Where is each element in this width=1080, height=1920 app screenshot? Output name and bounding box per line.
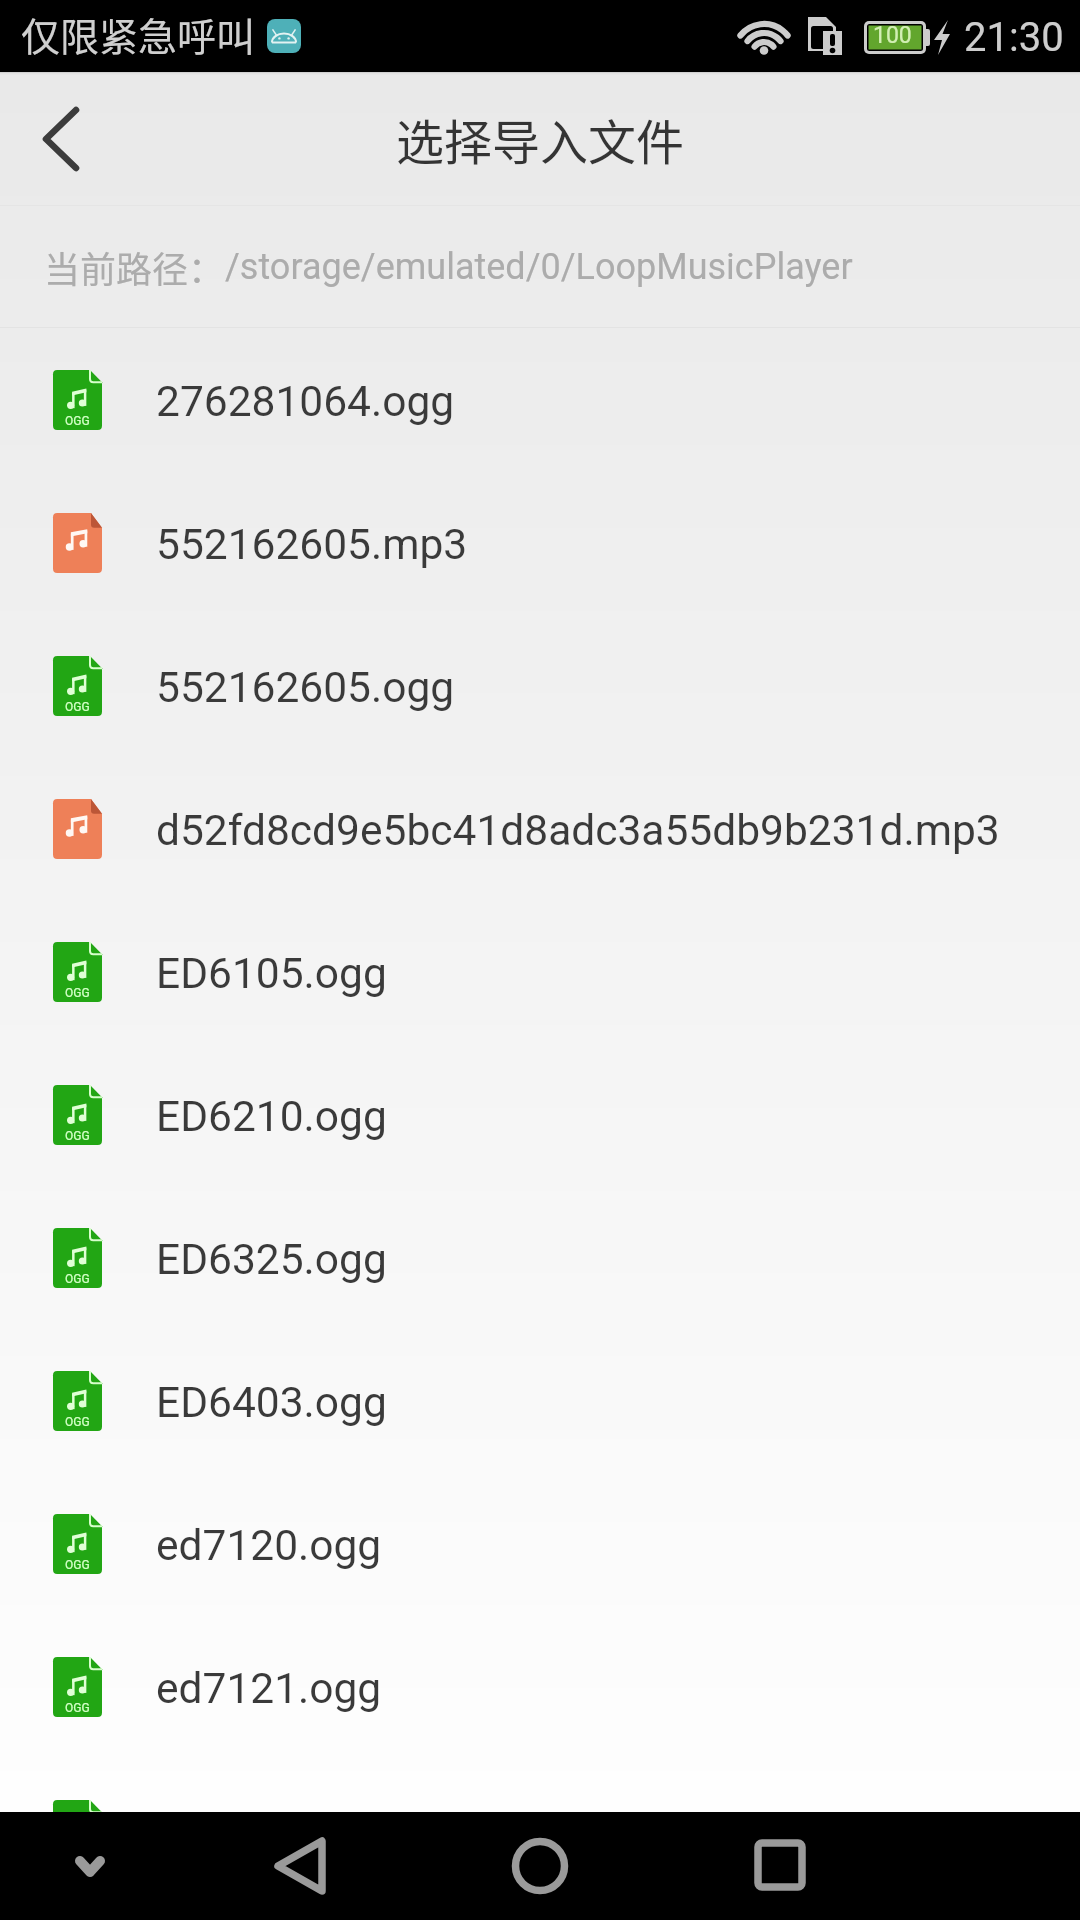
staticText: 100	[873, 22, 912, 49]
staticText: ed7121.ogg	[156, 1664, 382, 1714]
staticText: 276281064.ogg	[156, 377, 455, 427]
button[interactable]: OGG	[0, 900, 1080, 1043]
staticText: 552162605.mp3	[156, 520, 468, 570]
staticText: d52fd8cd9e5bc41d8adc3a55db9b231d.mp3	[156, 806, 1000, 856]
staticText: 选择导入文件	[396, 104, 685, 174]
staticText: OGG	[65, 1558, 90, 1572]
staticText: 21:30	[964, 14, 1064, 61]
staticText: OGG	[65, 700, 90, 714]
button[interactable]: 552162605.mp3	[0, 471, 1080, 614]
staticText: ED6325.ogg	[156, 1235, 387, 1285]
staticText: 仅限紧急呼叫	[21, 6, 256, 62]
staticText: 当前路径：	[44, 241, 225, 293]
button[interactable]: Back	[180, 1812, 420, 1920]
staticText: ED6105.ogg	[156, 949, 387, 999]
staticText: OGG	[65, 414, 90, 428]
button[interactable]: OGG	[0, 328, 1080, 471]
staticText: OGG	[65, 986, 90, 1000]
staticText: OGG	[65, 1701, 90, 1715]
button[interactable]: OGG	[0, 1472, 1080, 1615]
button[interactable]: Hide keyboard	[0, 1812, 180, 1920]
staticText: OGG	[65, 1272, 90, 1286]
staticText: ed7120.ogg	[156, 1521, 382, 1571]
button[interactable]: Home	[420, 1812, 660, 1920]
staticText: ED6210.ogg	[156, 1092, 387, 1142]
staticText: 552162605.ogg	[156, 663, 455, 713]
button[interactable]: OGG	[0, 1186, 1080, 1329]
staticText: OGG	[65, 1129, 90, 1143]
button[interactable]: Back	[0, 72, 130, 206]
button[interactable]: OGG	[0, 1615, 1080, 1758]
staticText: ED6403.ogg	[156, 1378, 387, 1428]
button[interactable]: OGG	[0, 614, 1080, 757]
button[interactable]: OGG	[0, 1758, 1080, 1812]
button[interactable]: d52fd8cd9e5bc41d8adc3a55db9b231d.mp3	[0, 757, 1080, 900]
button[interactable]: OGG	[0, 1329, 1080, 1472]
staticText: OGG	[65, 1415, 90, 1429]
staticText: /storage/emulated/0/LoopMusicPlayer	[225, 246, 853, 288]
button[interactable]: OGG	[0, 1043, 1080, 1186]
button[interactable]: Recents	[660, 1812, 900, 1920]
